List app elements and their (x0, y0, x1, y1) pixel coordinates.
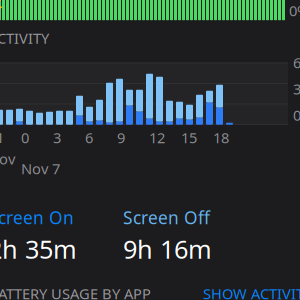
staticText: Screen Off (123, 206, 210, 229)
staticText: BATTERY USAGE BY APP (0, 284, 151, 300)
staticText: 18 (213, 128, 229, 147)
staticText: 60m (293, 53, 300, 72)
staticText: 12 (149, 128, 165, 147)
staticText: 15 (181, 128, 197, 147)
staticText: 2h 35m (0, 232, 77, 266)
staticText: SHOW ACTIVITY (203, 284, 300, 300)
staticText: 30m (293, 79, 300, 98)
staticText: ⚡ (0, 0, 5, 16)
staticText: 9h 16m (123, 232, 212, 266)
staticText: Screen On (0, 206, 74, 229)
staticText: 9 (117, 128, 125, 147)
staticText: 3 (53, 128, 61, 147)
staticText: Nov 7 (21, 159, 60, 178)
staticText: 6 (85, 128, 93, 147)
staticText: 0% (289, 1, 300, 20)
button[interactable]: SHOW ACTIVITY (203, 284, 300, 300)
staticText: Nov 6 (0, 149, 15, 188)
staticText: 0m (293, 105, 300, 125)
staticText: 21 (0, 128, 4, 147)
staticText: 0 (21, 128, 29, 147)
staticText: ACTIVITY (0, 28, 49, 48)
